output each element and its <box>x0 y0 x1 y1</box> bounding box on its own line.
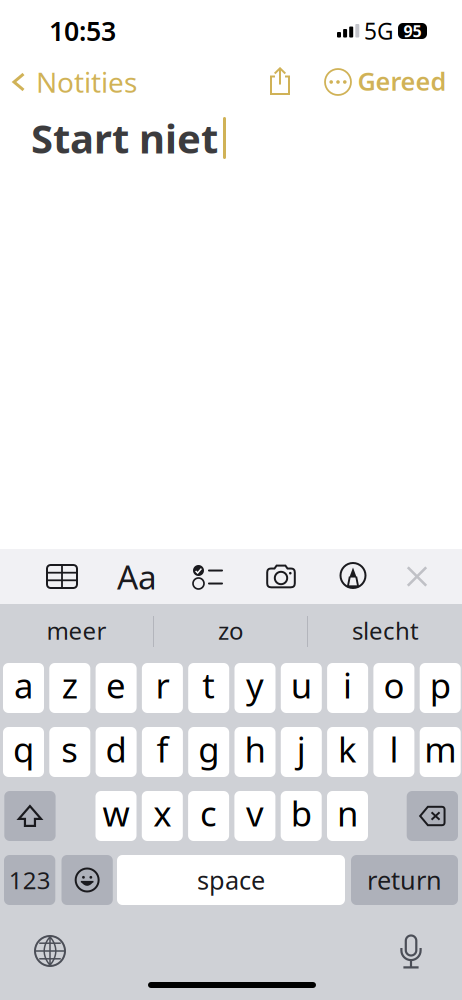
button[interactable]: Shift <box>4 791 56 841</box>
staticText: 10:53 <box>49 13 116 48</box>
button[interactable]: Markeren <box>326 548 380 603</box>
staticText: x <box>153 790 171 836</box>
staticText: 5G <box>364 16 394 46</box>
staticText: u <box>291 662 312 708</box>
button[interactable]: g <box>188 727 229 777</box>
button[interactable]: Aa <box>110 549 164 604</box>
staticText: a <box>14 662 33 708</box>
staticText: return <box>367 863 442 897</box>
staticText: i <box>343 662 352 708</box>
staticText: m <box>424 726 456 772</box>
button[interactable]: Volgend toetsenbord <box>28 931 72 971</box>
button[interactable]: o <box>373 663 414 713</box>
staticText: p <box>430 662 451 708</box>
staticText: space <box>197 863 265 897</box>
staticText: z <box>62 662 78 708</box>
button[interactable]: q <box>3 727 44 777</box>
button[interactable]: v <box>234 791 275 841</box>
staticText: Notities <box>36 63 137 101</box>
button[interactable]: p <box>420 663 461 713</box>
staticText: Gereed <box>357 64 446 98</box>
staticText: c <box>200 790 217 836</box>
staticText: zo <box>218 615 244 646</box>
staticText: b <box>291 790 312 836</box>
button[interactable]: d <box>96 727 137 777</box>
staticText: e <box>106 662 126 708</box>
button[interactable]: i <box>327 663 368 713</box>
button[interactable]: h <box>234 727 275 777</box>
button[interactable]: x <box>142 791 183 841</box>
staticText: r <box>155 662 169 708</box>
staticText: f <box>156 726 168 772</box>
button[interactable]: e <box>96 663 137 713</box>
button[interactable]: Checklist <box>181 549 235 604</box>
staticText: j <box>297 726 306 772</box>
button[interactable]: s <box>49 727 90 777</box>
button[interactable]: z <box>49 663 90 713</box>
staticText: slecht <box>352 615 419 646</box>
button[interactable]: Dicteren <box>389 932 433 972</box>
staticText: 95 <box>403 20 421 42</box>
button[interactable]: y <box>234 663 275 713</box>
button[interactable]: Emoji <box>61 855 113 905</box>
button[interactable]: f <box>142 727 183 777</box>
staticText: n <box>337 790 358 836</box>
button[interactable]: a <box>3 663 44 713</box>
button[interactable]: c <box>188 791 229 841</box>
staticText: w <box>102 790 129 836</box>
staticText: s <box>61 726 78 772</box>
button[interactable]: Meer <box>316 61 360 103</box>
button[interactable]: b <box>281 791 322 841</box>
button[interactable]: 123 <box>4 855 55 905</box>
staticText: meer <box>46 615 106 646</box>
staticText: o <box>383 662 404 708</box>
button[interactable]: Notities <box>0 62 151 102</box>
button[interactable]: meer <box>0 604 153 657</box>
button[interactable]: r <box>142 663 183 713</box>
button[interactable]: space <box>117 855 345 905</box>
button[interactable]: l <box>373 727 414 777</box>
button[interactable]: t <box>188 663 229 713</box>
button[interactable]: Sluiten <box>390 549 444 604</box>
button[interactable]: Tabel <box>35 549 89 604</box>
button[interactable]: slecht <box>309 604 462 657</box>
button[interactable]: zo <box>154 604 308 657</box>
button[interactable]: Deel <box>258 60 302 102</box>
button[interactable]: k <box>327 727 368 777</box>
staticText: h <box>244 726 265 772</box>
button[interactable]: u <box>281 663 322 713</box>
button[interactable]: m <box>420 727 461 777</box>
staticText: t <box>202 662 215 708</box>
button[interactable]: Gereed <box>354 60 450 102</box>
staticText: d <box>106 726 127 772</box>
button[interactable]: n <box>327 791 368 841</box>
staticText: y <box>246 662 264 708</box>
button[interactable]: w <box>95 791 136 841</box>
staticText: q <box>13 726 34 772</box>
button[interactable]: j <box>281 727 322 777</box>
staticText: l <box>389 726 398 772</box>
button[interactable]: Camera <box>254 549 308 604</box>
button[interactable]: return <box>351 855 458 905</box>
button[interactable]: Wissen <box>407 791 458 841</box>
staticText: Start niet <box>31 111 218 164</box>
staticText: 123 <box>9 864 51 896</box>
staticText: k <box>338 726 357 772</box>
staticText: v <box>246 790 264 836</box>
staticText: g <box>198 726 219 772</box>
staticText: Aa <box>117 554 157 599</box>
